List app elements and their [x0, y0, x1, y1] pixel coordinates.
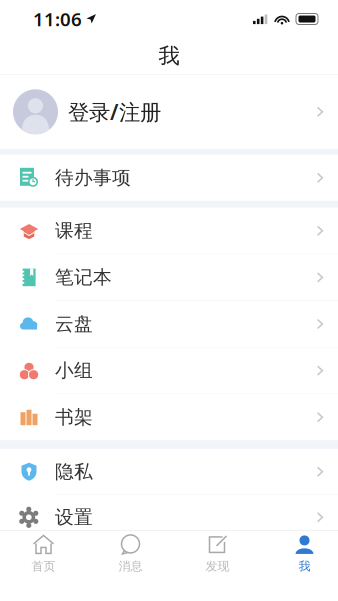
- button[interactable]: 首页: [0, 531, 87, 577]
- button[interactable]: 隐私: [0, 449, 338, 494]
- staticText: 隐私: [55, 460, 93, 483]
- staticText: 课程: [55, 219, 93, 242]
- staticText: 设置: [55, 506, 93, 529]
- button[interactable]: 笔记本: [0, 254, 338, 300]
- staticText: 11:06: [33, 7, 82, 31]
- button[interactable]: 云盘: [0, 301, 338, 347]
- staticText: 发现: [205, 559, 229, 574]
- button[interactable]: 待办事项: [0, 155, 338, 201]
- button[interactable]: 登录/注册: [0, 75, 338, 149]
- button[interactable]: 课程: [0, 208, 338, 254]
- staticText: 待办事项: [55, 166, 131, 189]
- button[interactable]: 消息: [87, 531, 174, 577]
- button[interactable]: 设置: [0, 495, 338, 540]
- button[interactable]: 我: [261, 531, 338, 577]
- staticText: 小组: [55, 359, 93, 382]
- staticText: 云盘: [55, 312, 93, 335]
- staticText: 消息: [118, 559, 142, 574]
- staticText: 登录/注册: [68, 98, 161, 126]
- button[interactable]: 发现: [174, 531, 261, 577]
- staticText: 笔记本: [55, 266, 112, 289]
- button[interactable]: 小组: [0, 348, 338, 394]
- staticText: 我: [298, 559, 310, 574]
- staticText: 我: [158, 43, 179, 69]
- staticText: 书架: [55, 406, 93, 429]
- button[interactable]: 书架: [0, 394, 338, 440]
- staticText: 首页: [31, 559, 55, 574]
